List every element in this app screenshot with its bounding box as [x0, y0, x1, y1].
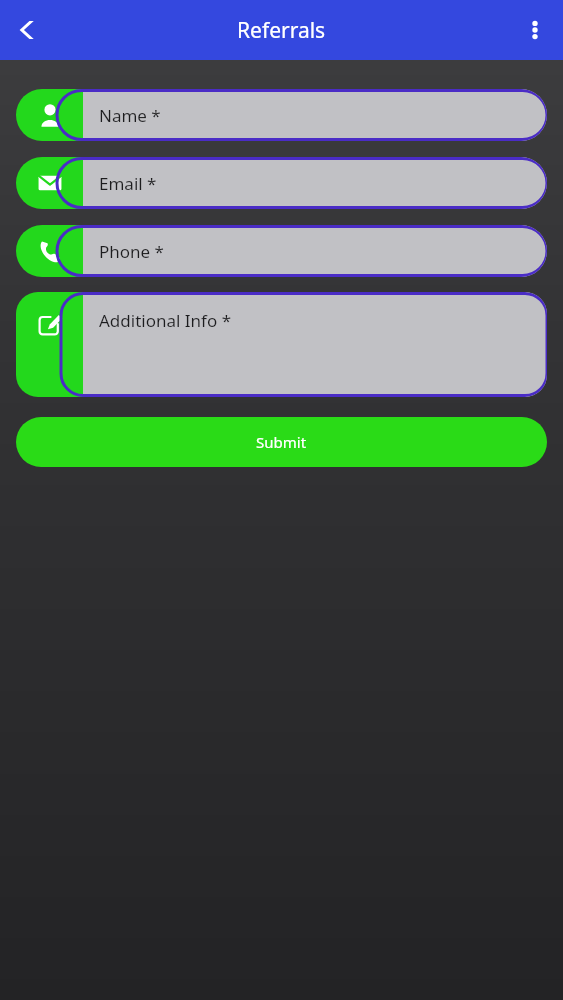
- button[interactable]: More options: [511, 6, 559, 54]
- staticText: Name *: [99, 104, 161, 127]
- staticText: Submit: [256, 432, 307, 452]
- button[interactable]: Additional Info *: [16, 292, 547, 397]
- button[interactable]: Submit: [16, 417, 547, 467]
- button[interactable]: Email *: [16, 157, 547, 209]
- button[interactable]: Name *: [16, 89, 547, 141]
- staticText: Email *: [99, 172, 157, 195]
- staticText: Additional Info *: [99, 309, 232, 332]
- button[interactable]: Back: [4, 6, 52, 54]
- staticText: Phone *: [99, 240, 164, 263]
- staticText: Referrals: [237, 16, 326, 45]
- button[interactable]: Phone *: [16, 225, 547, 277]
